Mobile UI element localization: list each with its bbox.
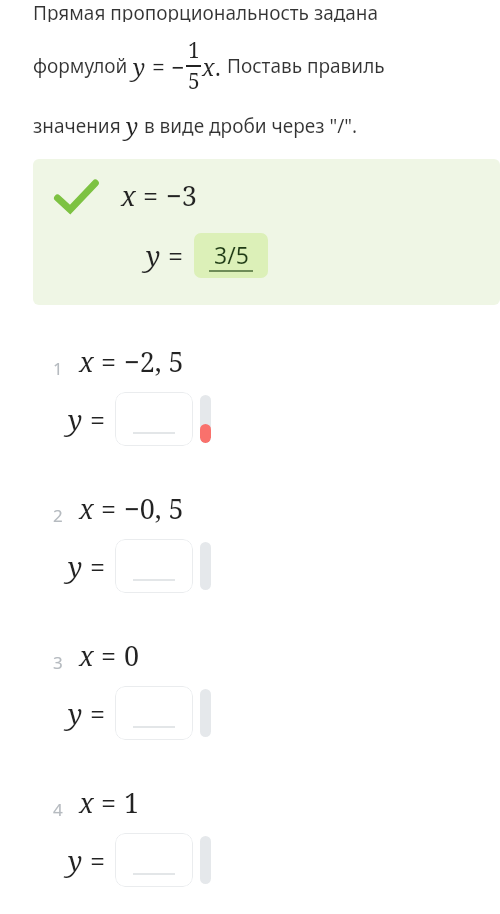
staticText: x bbox=[79, 343, 94, 380]
staticText: −2, 5 bbox=[124, 343, 184, 380]
button[interactable]: 3/5 bbox=[194, 233, 268, 278]
staticText: x bbox=[79, 490, 94, 527]
staticText: x bbox=[79, 637, 94, 674]
staticText: = bbox=[83, 695, 106, 732]
staticText: 4 bbox=[53, 798, 63, 821]
staticText: y bbox=[68, 401, 83, 438]
staticText: = bbox=[161, 237, 184, 274]
staticText: y bbox=[126, 110, 139, 141]
staticText: = bbox=[83, 401, 106, 438]
button[interactable]: Answer input bbox=[115, 833, 193, 887]
staticText: значения bbox=[33, 113, 126, 139]
staticText: = bbox=[94, 490, 124, 527]
button[interactable]: Answer input bbox=[115, 539, 193, 593]
staticText: y bbox=[146, 237, 161, 274]
staticText: Поставь правиль bbox=[227, 53, 385, 79]
staticText: 3 bbox=[53, 651, 63, 674]
staticText: y bbox=[68, 548, 83, 585]
staticText: = bbox=[83, 548, 106, 585]
button[interactable]: Answer input bbox=[115, 686, 193, 740]
staticText: Прямая пропорциональность задана bbox=[33, 0, 379, 22]
staticText: 0 bbox=[124, 637, 140, 674]
button[interactable]: Answer input bbox=[115, 392, 193, 446]
staticText: x bbox=[202, 51, 215, 82]
staticText: x bbox=[121, 177, 136, 214]
staticText: = bbox=[146, 51, 171, 82]
staticText: −3 bbox=[166, 177, 197, 214]
staticText: − bbox=[171, 51, 185, 82]
staticText: 2 bbox=[53, 504, 63, 527]
staticText: y bbox=[68, 842, 83, 879]
staticText: 1 bbox=[124, 784, 140, 821]
staticText: формулой bbox=[33, 53, 133, 79]
staticText: 5 bbox=[188, 67, 200, 96]
staticText: x bbox=[79, 784, 94, 821]
staticText: = bbox=[94, 343, 124, 380]
staticText: = bbox=[136, 177, 166, 214]
staticText: 1 bbox=[188, 36, 200, 65]
staticText: . bbox=[215, 51, 227, 82]
staticText: y bbox=[68, 695, 83, 732]
staticText: = bbox=[83, 842, 106, 879]
staticText: 3/5 bbox=[214, 239, 249, 270]
staticText: = bbox=[94, 637, 124, 674]
staticText: −0, 5 bbox=[124, 490, 184, 527]
staticText: 1 bbox=[53, 357, 63, 380]
staticText: y bbox=[133, 51, 146, 82]
staticText: в виде дроби через "/". bbox=[139, 113, 358, 139]
staticText: = bbox=[94, 784, 124, 821]
